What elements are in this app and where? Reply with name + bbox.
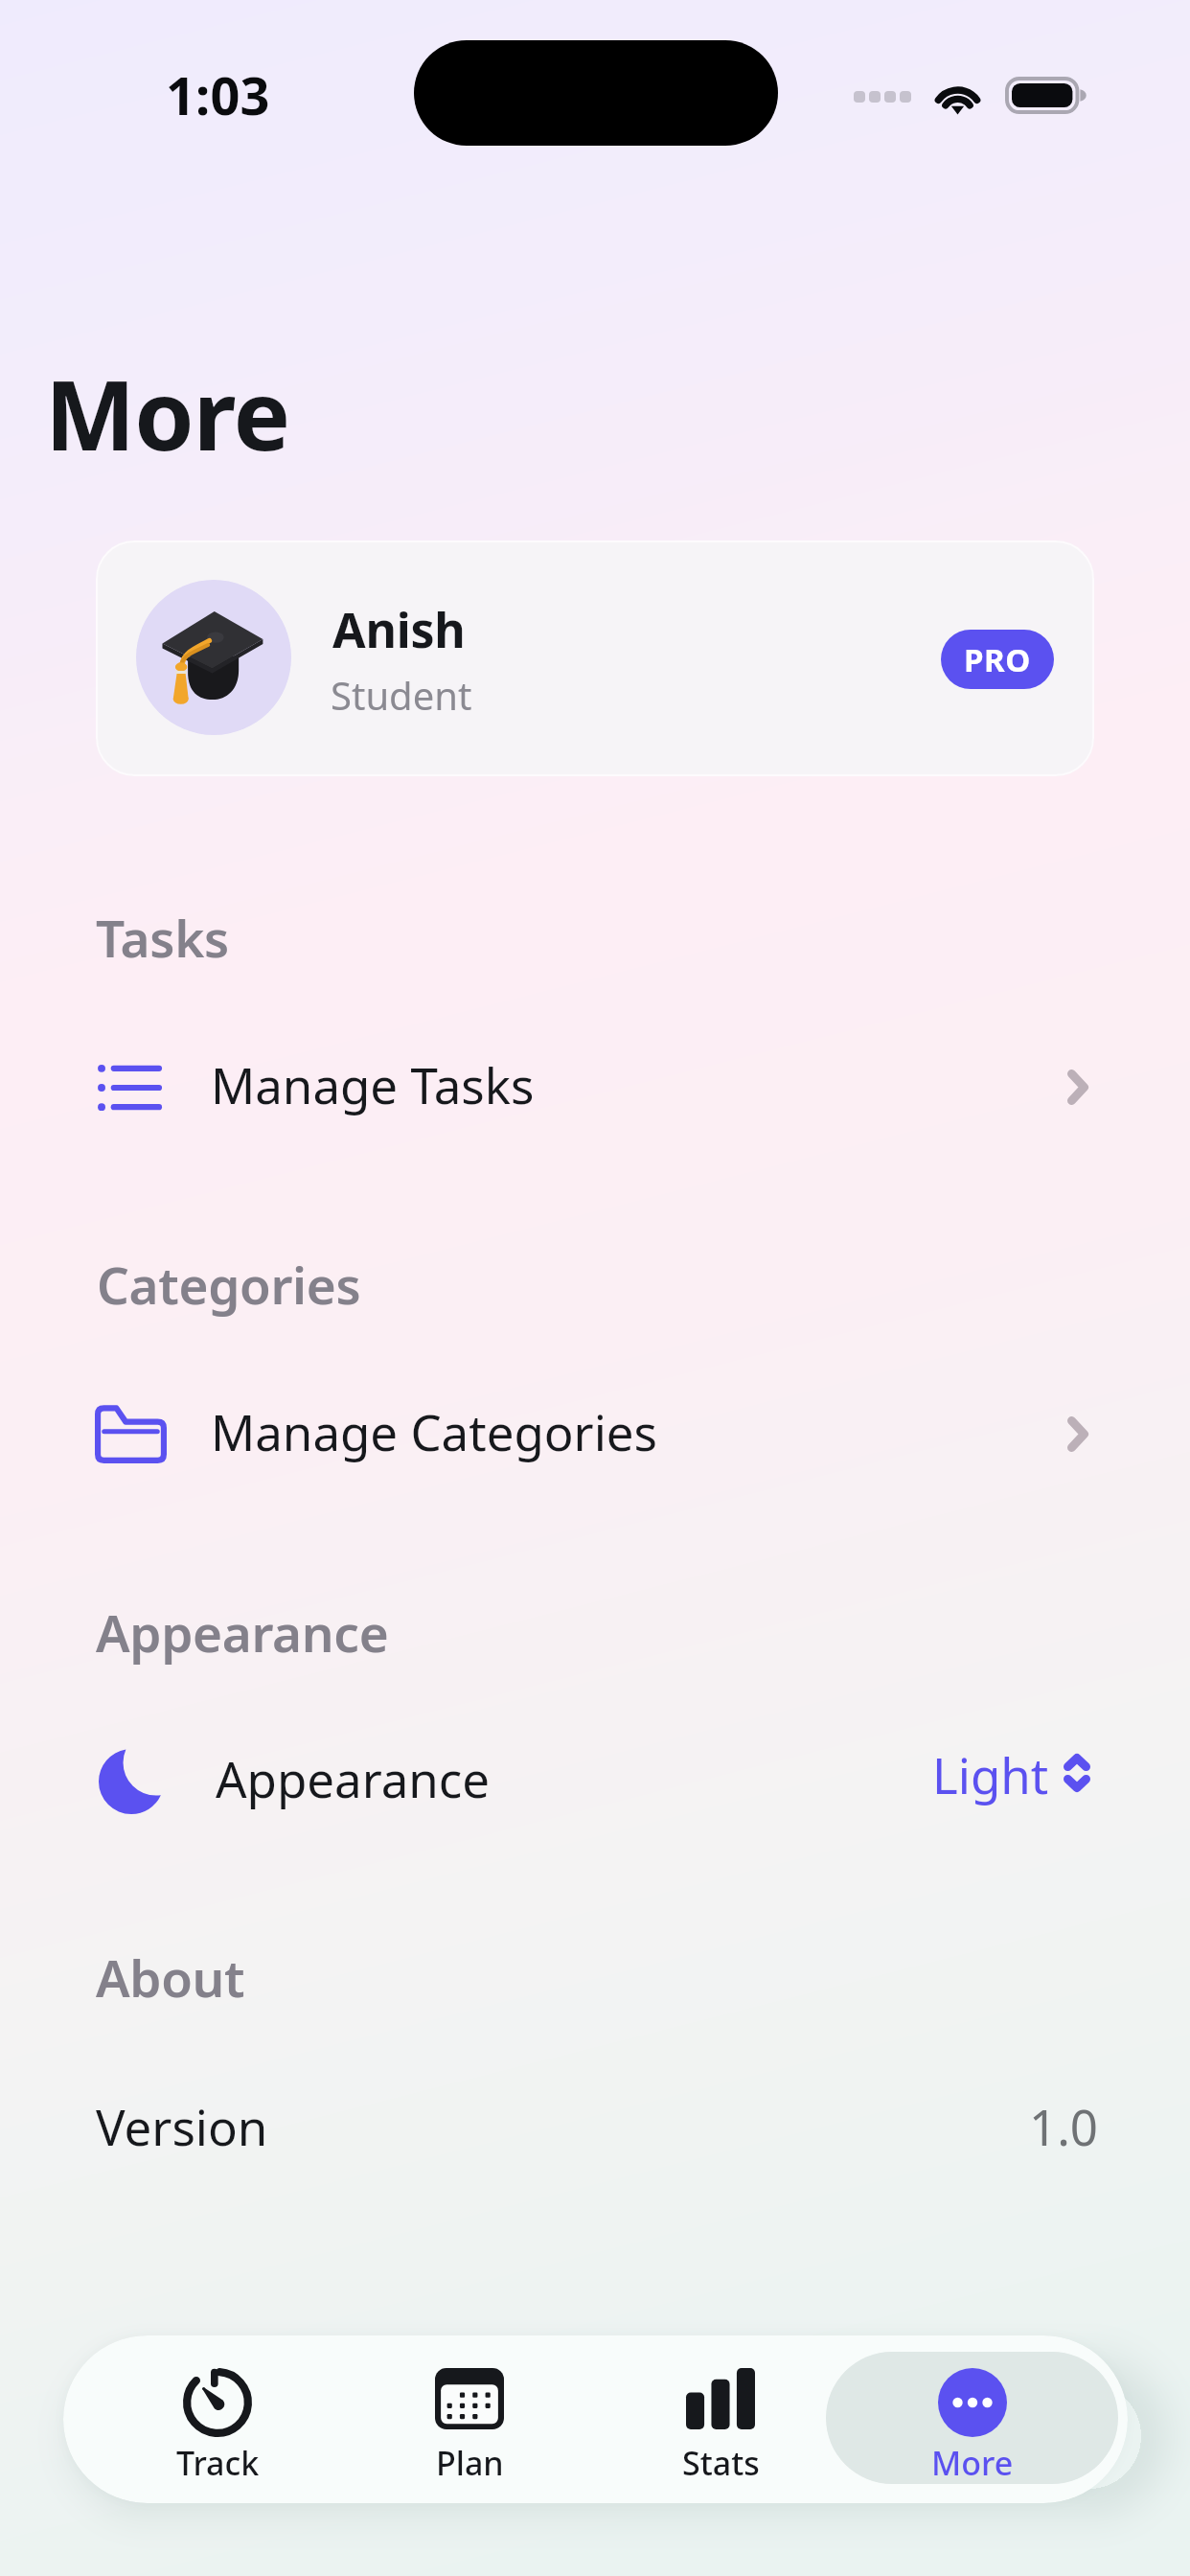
button[interactable]: Categories folder — [0, 1374, 1190, 1493]
button[interactable]: Track — [92, 2335, 343, 2503]
staticText: Plan — [436, 2441, 504, 2485]
staticText: Light — [932, 1741, 1049, 1807]
staticText: Manage Tasks — [211, 1051, 535, 1117]
staticText: Appearance — [96, 1598, 389, 1667]
staticText: Manage Categories — [211, 1398, 658, 1464]
other: Theme — [99, 1749, 164, 1814]
other: Tasks list — [98, 1065, 162, 1111]
button[interactable]: Anish — [96, 540, 1094, 776]
other: Plan — [435, 2368, 504, 2429]
staticText: Stats — [682, 2441, 760, 2485]
staticText: Anish — [332, 597, 466, 662]
staticText: Version — [96, 2093, 268, 2159]
button[interactable]: PRO — [941, 630, 1054, 689]
other: Change theme — [1064, 1754, 1090, 1792]
staticText: More — [931, 2441, 1014, 2484]
button[interactable]: More — [826, 2352, 1118, 2484]
button[interactable]: Stats — [595, 2335, 846, 2503]
button[interactable]: Plan — [344, 2335, 595, 2503]
staticText: More — [45, 348, 290, 478]
staticText: 1:03 — [166, 59, 270, 130]
staticText: Track — [176, 2441, 260, 2485]
staticText: Student — [331, 669, 472, 721]
other: More — [938, 2368, 1007, 2437]
other: Stats — [686, 2368, 755, 2429]
staticText: Appearance — [216, 1745, 491, 1811]
staticText: About — [96, 1943, 245, 2012]
staticText: Tasks — [96, 903, 229, 972]
other: Track — [183, 2368, 252, 2437]
staticText: Categories — [97, 1250, 361, 1319]
staticText: 1.0 — [1029, 2093, 1099, 2159]
button[interactable]: Theme — [0, 1721, 1190, 1840]
button[interactable]: Tasks list — [0, 1027, 1190, 1146]
other: Categories folder — [95, 1405, 167, 1463]
staticText: PRO — [964, 638, 1032, 681]
